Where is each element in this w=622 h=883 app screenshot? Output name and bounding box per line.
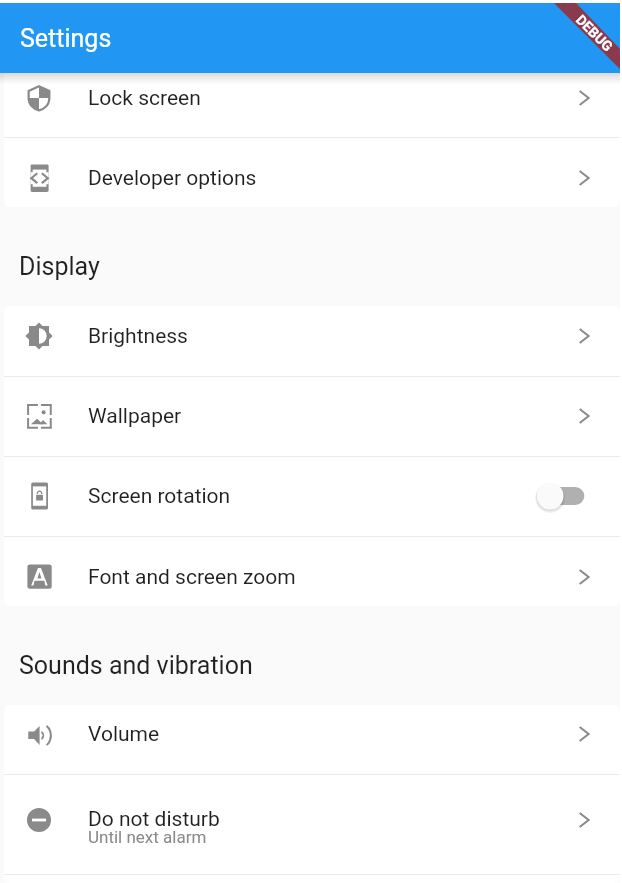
button[interactable]: Do not disturb [4,780,620,860]
staticText: Display [19,252,100,281]
button[interactable]: Wallpaper [4,376,620,456]
staticText: Brightness [88,324,188,349]
button[interactable]: Screen rotation toggle [534,476,594,516]
button[interactable]: Developer options [4,138,620,207]
staticText: Sounds and vibration [19,651,253,680]
staticText: Font and screen zoom [88,565,296,590]
button[interactable]: Screen rotation [4,456,620,536]
staticText: Do not disturb [88,807,220,832]
staticText: Until next alarm [88,827,207,847]
staticText: Lock screen [88,86,201,111]
staticText: Volume [88,722,160,747]
staticText: Screen rotation [88,484,231,509]
staticText: Developer options [88,166,257,191]
button[interactable]: Volume [4,705,620,774]
button[interactable]: Font and screen zoom [4,537,620,606]
staticText: Wallpaper [88,404,182,429]
button[interactable]: Brightness [4,306,620,376]
staticText: Settings [20,24,112,53]
staticText: DEBUG [573,11,616,54]
button[interactable]: Lock screen [4,60,620,138]
